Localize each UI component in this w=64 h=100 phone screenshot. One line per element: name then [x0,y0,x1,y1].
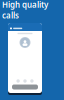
staticText: High quality calls [2,0,48,21]
